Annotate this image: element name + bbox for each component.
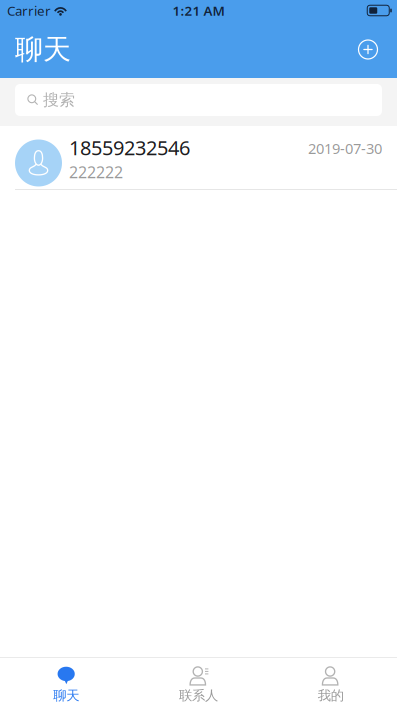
- staticText: 222222: [69, 161, 123, 183]
- staticText: 聊天: [53, 687, 79, 704]
- staticText: 2019-07-30: [308, 138, 382, 158]
- button[interactable]: 联系人: [132, 658, 265, 706]
- staticText: Carrier: [7, 2, 51, 19]
- staticText: 联系人: [179, 687, 218, 704]
- button[interactable]: 聊天: [0, 658, 132, 706]
- staticText: 聊天: [15, 32, 71, 67]
- staticText: 我的: [318, 687, 344, 704]
- staticText: 1:21 AM: [172, 2, 224, 19]
- staticText: 18559232546: [69, 134, 190, 161]
- button[interactable]: 我的: [265, 658, 397, 706]
- button[interactable]: New chat: [348, 29, 388, 69]
- button[interactable]: 18559232546: [0, 126, 397, 190]
- button[interactable]: 搜索: [15, 84, 382, 116]
- staticText: 搜索: [43, 90, 75, 110]
